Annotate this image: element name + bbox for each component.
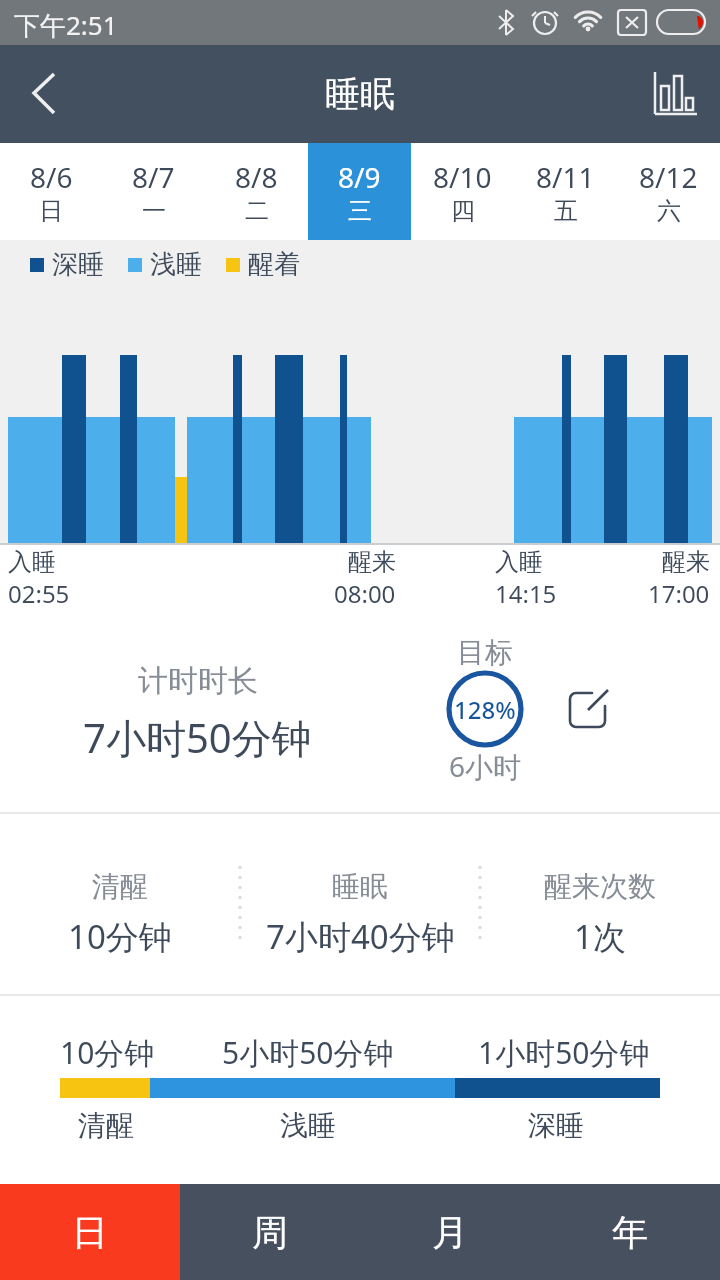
staticText: 清醒 bbox=[92, 869, 148, 904]
button[interactable]: 8/9 bbox=[308, 143, 411, 240]
staticText: 二 bbox=[245, 196, 269, 226]
button[interactable] bbox=[560, 682, 616, 738]
staticText: 醒来 bbox=[662, 547, 710, 577]
staticText: 8/9 bbox=[338, 158, 381, 196]
button[interactable]: 年 bbox=[540, 1184, 720, 1280]
button[interactable] bbox=[0, 45, 90, 143]
staticText: 日 bbox=[39, 196, 63, 226]
button[interactable]: 8/10 bbox=[411, 143, 514, 240]
staticText: 周 bbox=[252, 1210, 288, 1255]
staticText: 醒着 bbox=[248, 248, 300, 281]
button[interactable]: 8/12 bbox=[617, 143, 720, 240]
button[interactable]: 8/11 bbox=[514, 143, 617, 240]
staticText: 02:55 bbox=[8, 577, 70, 609]
staticText: 三 bbox=[348, 196, 372, 226]
staticText: 8/12 bbox=[639, 158, 698, 196]
button[interactable]: 日 bbox=[0, 1184, 180, 1280]
staticText: 入睡 bbox=[495, 547, 543, 577]
staticText: 14:15 bbox=[495, 577, 557, 609]
staticText: 8/10 bbox=[433, 158, 492, 196]
button[interactable]: 月 bbox=[360, 1184, 540, 1280]
staticText: 128% bbox=[454, 693, 516, 726]
staticText: 睡眠 bbox=[332, 869, 388, 904]
staticText: 8/8 bbox=[235, 158, 278, 196]
staticText: 深睡 bbox=[528, 1108, 584, 1143]
staticText: 醒来 bbox=[348, 547, 396, 577]
staticText: 浅睡 bbox=[280, 1108, 336, 1143]
staticText: 浅睡 bbox=[150, 248, 202, 281]
staticText: 下午2:51 bbox=[14, 7, 118, 43]
staticText: 清醒 bbox=[78, 1108, 134, 1143]
staticText: 入睡 bbox=[8, 547, 56, 577]
staticText: 8/7 bbox=[132, 158, 175, 196]
button[interactable]: 8/8 bbox=[205, 143, 308, 240]
staticText: 1小时50分钟 bbox=[478, 1032, 650, 1073]
staticText: 计时时长 bbox=[138, 662, 258, 700]
button[interactable] bbox=[630, 45, 720, 143]
staticText: 年 bbox=[612, 1210, 648, 1255]
staticText: 睡眠 bbox=[325, 72, 395, 116]
staticText: 10分钟 bbox=[68, 914, 172, 959]
staticText: 醒来次数 bbox=[544, 869, 656, 904]
staticText: 目标 bbox=[457, 635, 513, 670]
button[interactable]: 8/7 bbox=[102, 143, 205, 240]
staticText: 一 bbox=[142, 196, 166, 226]
staticText: 6小时 bbox=[449, 747, 522, 785]
staticText: 四 bbox=[451, 196, 475, 226]
staticText: 5小时50分钟 bbox=[222, 1032, 394, 1073]
button[interactable]: 8/6 bbox=[0, 143, 102, 240]
staticText: 月 bbox=[432, 1210, 468, 1255]
staticText: 7小时50分钟 bbox=[83, 710, 312, 765]
staticText: 17:00 bbox=[648, 577, 710, 609]
staticText: 六 bbox=[657, 196, 681, 226]
staticText: 08:00 bbox=[334, 577, 396, 609]
staticText: 深睡 bbox=[52, 248, 104, 281]
staticText: 8/6 bbox=[30, 158, 73, 196]
staticText: 五 bbox=[554, 196, 578, 226]
staticText: 日 bbox=[72, 1210, 108, 1255]
staticText: 7小时40分钟 bbox=[266, 914, 455, 959]
staticText: 8/11 bbox=[536, 158, 595, 196]
staticText: 10分钟 bbox=[60, 1032, 155, 1073]
staticText: 1次 bbox=[574, 914, 626, 959]
button[interactable]: 周 bbox=[180, 1184, 360, 1280]
